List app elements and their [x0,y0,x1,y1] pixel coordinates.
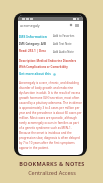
staticText: BOOKMARKS & NOTES [19,160,85,167]
staticText: Read: 253.1 | Desc [19,49,47,53]
staticText: IMS Information [19,34,47,39]
staticText: Centralized Access [28,169,76,176]
staticText: Get more about this [19,72,51,76]
staticText: Acromegaly is a rare, chronic, and disab… [19,81,82,150]
staticText: IMS Category: A/B [19,42,47,46]
button[interactable]: Add Audio Note [53,50,74,54]
button[interactable]: acromegaly [18,21,83,29]
button[interactable]: Add Text Note [53,42,72,46]
button[interactable]: Get more about this [19,72,56,76]
staticText: Description: Medical Endocrine Disorders… [19,59,82,69]
button[interactable]: Bookmark [69,23,73,27]
button[interactable]: Add to Favorites [53,34,75,38]
staticText: acromegaly [20,23,40,28]
